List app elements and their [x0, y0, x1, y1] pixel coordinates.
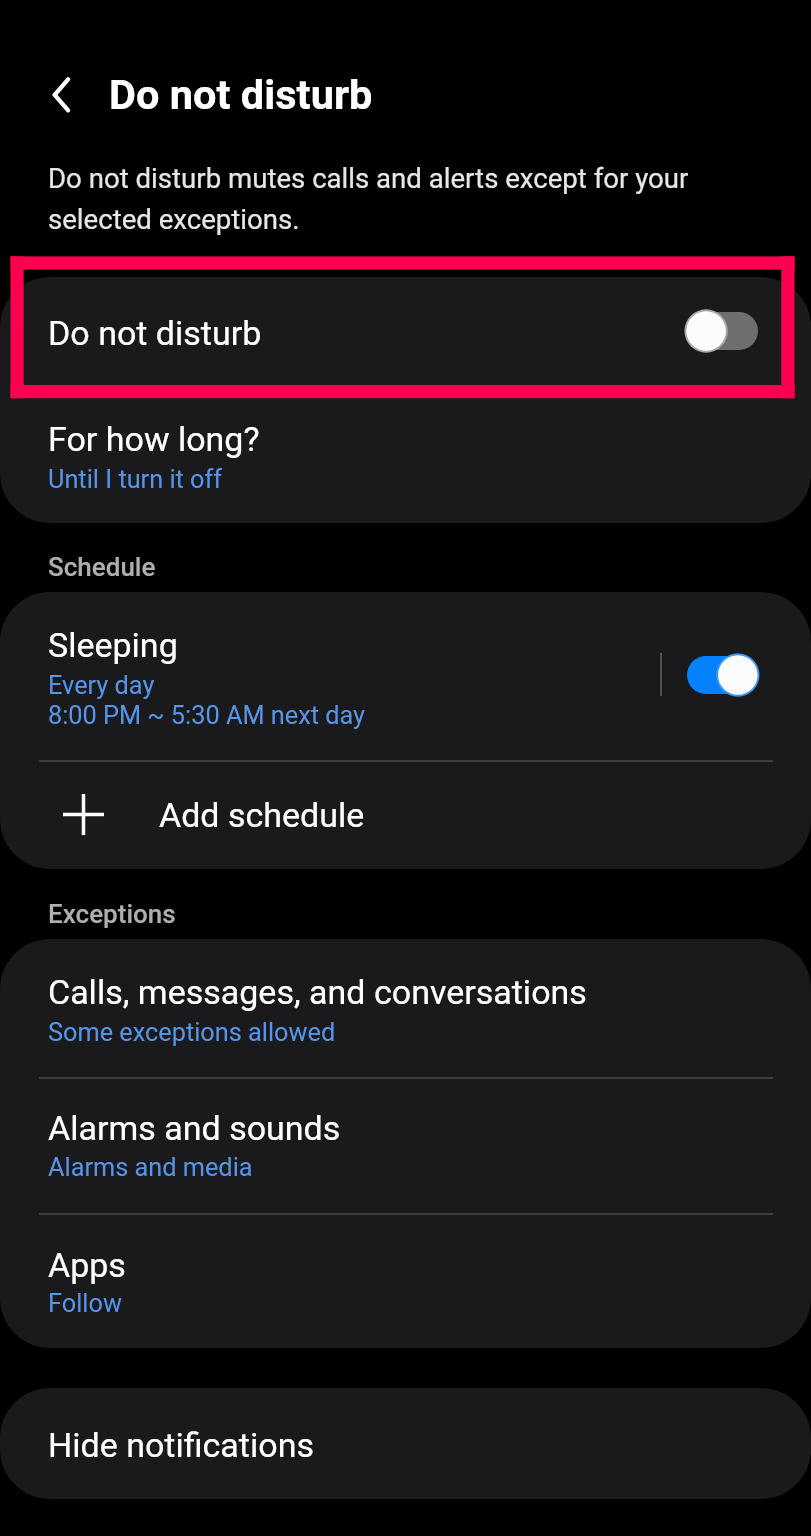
staticText: Some exceptions allowed — [48, 1018, 336, 1048]
button[interactable]: Turn off — [669, 637, 777, 713]
button[interactable]: Add schedule — [0, 760, 811, 869]
staticText: Calls, messages, and conversations — [48, 972, 587, 1012]
staticText: Exceptions — [48, 899, 176, 929]
button[interactable]: Sleeping — [0, 592, 650, 760]
staticText: For how long? — [48, 419, 260, 459]
button[interactable]: Alarms and sounds — [0, 1077, 811, 1213]
staticText: Apps — [48, 1245, 126, 1285]
button[interactable]: Turn on — [668, 293, 776, 369]
button[interactable]: Calls, messages, and conversations — [0, 939, 811, 1077]
staticText: Do not disturb mutes calls and alerts ex… — [48, 162, 703, 236]
button[interactable]: For how long? — [0, 390, 811, 523]
staticText: Schedule — [48, 552, 156, 582]
button[interactable]: Hide notifications — [0, 1388, 811, 1499]
staticText: Until I turn it off — [48, 465, 223, 495]
staticText: Alarms and media — [48, 1153, 253, 1183]
staticText: Follow — [48, 1289, 122, 1319]
staticText: Do not disturb — [48, 313, 262, 353]
staticText: Sleeping — [48, 625, 178, 665]
staticText: 8:00 PM ~ 5:30 AM next day — [48, 701, 366, 731]
staticText: Hide notifications — [48, 1425, 314, 1465]
button[interactable]: Do not disturb — [0, 277, 811, 390]
button[interactable]: Navigate up — [25, 59, 97, 131]
staticText: Every day — [48, 671, 155, 701]
staticText: Do not disturb — [109, 70, 373, 119]
staticText: Alarms and sounds — [48, 1108, 341, 1148]
staticText: Add schedule — [159, 795, 365, 835]
button[interactable]: Apps — [0, 1213, 811, 1348]
